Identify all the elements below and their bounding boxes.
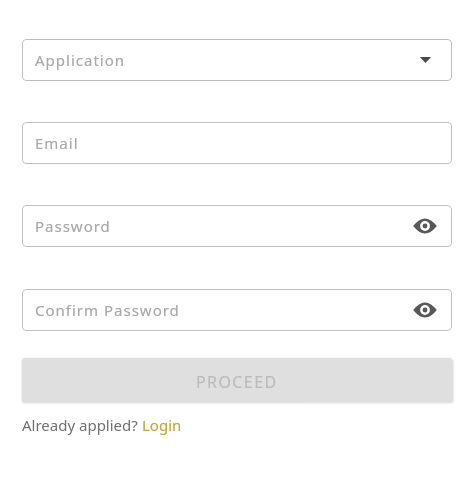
button[interactable]: Show password <box>412 213 438 239</box>
staticText: Email <box>35 133 79 153</box>
staticText: Confirm Password <box>35 300 180 320</box>
button[interactable]: Email <box>22 122 452 164</box>
button[interactable]: Open dropdown <box>414 48 438 72</box>
button[interactable]: Application <box>22 39 452 81</box>
staticText: PROCEED <box>196 371 278 393</box>
staticText: Application <box>35 50 126 70</box>
button[interactable]: Password <box>22 205 452 247</box>
button[interactable]: PROCEED <box>22 358 452 402</box>
button[interactable]: Confirm Password <box>22 289 452 331</box>
button[interactable]: Show password <box>412 297 438 323</box>
button[interactable]: Login <box>142 415 182 435</box>
staticText: Already applied? <box>22 415 138 435</box>
staticText: Password <box>35 216 111 236</box>
